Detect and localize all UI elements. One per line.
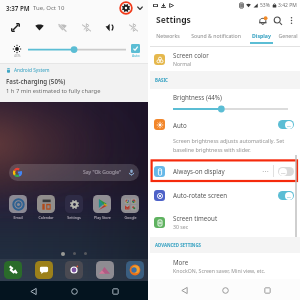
staticText: KnockON, Screen saver, Mini view, etc. — [173, 267, 266, 274]
button[interactable]: More — [150, 253, 300, 279]
button[interactable]: App — [96, 261, 114, 279]
button[interactable]: Notifications — [255, 13, 270, 28]
button[interactable]: Settings — [118, 0, 133, 15]
button[interactable]: Quick setting — [7, 19, 23, 35]
button[interactable]: Quick setting — [101, 19, 117, 35]
staticText: 1 h 7 min estimated to fully charge — [6, 87, 101, 95]
button[interactable]: Recent apps — [259, 282, 275, 298]
button[interactable]: Auto — [131, 44, 140, 58]
button[interactable]: Settings — [60, 195, 88, 220]
staticText: 30 sec — [173, 223, 189, 230]
staticText: Fast-charging (50%) — [6, 77, 66, 85]
staticText: Email — [13, 215, 23, 220]
staticText: Auto — [132, 53, 140, 58]
button[interactable]: Recent apps — [107, 283, 123, 299]
button[interactable]: Auto-rotate screen — [150, 183, 300, 207]
staticText: Display — [252, 32, 271, 39]
button[interactable]: Display — [247, 29, 275, 44]
staticText: More — [173, 258, 189, 266]
staticText: Auto — [173, 121, 187, 129]
button[interactable]: Toggle — [278, 120, 294, 129]
staticText: Brightness (44%) — [173, 93, 222, 101]
staticText: Screen color — [173, 51, 209, 59]
button[interactable]: General — [275, 29, 300, 42]
staticText: Android System — [14, 67, 50, 74]
button[interactable]: App — [65, 261, 83, 279]
staticText: Networks — [156, 32, 180, 39]
button[interactable]: Screen color — [150, 47, 300, 71]
button[interactable]: Sound & notification — [185, 29, 247, 42]
staticText: Say "Ok Google" — [83, 169, 122, 176]
staticText: 43% — [14, 54, 21, 58]
staticText: BASIC — [155, 77, 168, 83]
button[interactable]: Networks — [151, 29, 185, 42]
staticText: Google — [124, 215, 137, 220]
button[interactable]: Auto — [150, 114, 300, 135]
button[interactable]: App — [35, 261, 53, 279]
button[interactable]: Say "Ok Google" — [9, 164, 139, 181]
button[interactable]: Toggle — [278, 167, 294, 176]
staticText: ADVANCED SETTINGS — [155, 242, 202, 248]
staticText: Screen timeout — [173, 214, 218, 222]
button[interactable]: Quick setting — [78, 19, 94, 35]
button[interactable]: Back — [25, 283, 41, 299]
staticText: 3:42 PM — [278, 2, 297, 9]
staticText: ON — [287, 124, 291, 127]
button[interactable]: Google — [116, 195, 144, 220]
staticText: Always-on display — [173, 167, 225, 175]
button[interactable]: Play Store — [88, 195, 116, 220]
staticText: Tue, Oct 10 — [33, 4, 65, 12]
staticText: 3:37 PM — [6, 4, 30, 12]
button[interactable]: Quick setting — [125, 19, 141, 35]
staticText: Play Store — [94, 215, 111, 220]
staticText: Calendar — [38, 215, 54, 220]
button[interactable]: App — [126, 261, 144, 279]
button[interactable]: Home — [66, 283, 82, 299]
button[interactable]: Always-on display — [150, 159, 300, 183]
button[interactable]: Home — [217, 282, 233, 298]
staticText: Screen brightness adjusts automatically.… — [173, 137, 288, 154]
staticText: Settings — [67, 215, 81, 220]
staticText: Sound & notification — [191, 32, 241, 39]
button[interactable]: Screen timeout — [150, 207, 300, 237]
button[interactable]: Toggle — [278, 191, 294, 200]
button[interactable]: Back — [176, 282, 192, 298]
staticText: OFF — [281, 171, 286, 174]
button[interactable]: Expand — [135, 3, 144, 12]
staticText: Auto-rotate screen — [173, 191, 228, 199]
button[interactable]: Calendar — [32, 195, 60, 220]
staticText: 53% — [260, 2, 270, 9]
staticText: Settings — [156, 14, 191, 26]
staticText: General — [278, 32, 298, 39]
staticText: Normal — [173, 60, 192, 67]
button[interactable]: Search — [270, 13, 285, 28]
button[interactable]: Quick setting — [31, 19, 47, 35]
button[interactable]: More options — [285, 14, 297, 26]
staticText: ON — [287, 195, 291, 198]
button[interactable]: Quick setting — [54, 19, 70, 35]
button[interactable]: App — [4, 261, 22, 279]
button[interactable]: Email — [4, 195, 32, 220]
